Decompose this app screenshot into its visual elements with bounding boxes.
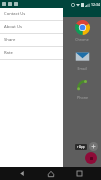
button[interactable]: About Us — [0, 21, 63, 33]
button[interactable]: r App — [77, 145, 85, 149]
button[interactable]: Phone — [67, 77, 97, 101]
staticText: Contact Us — [4, 11, 26, 17]
button[interactable]: Email — [67, 48, 97, 72]
button[interactable]: Add item — [85, 152, 97, 164]
button[interactable]: Rate — [0, 47, 63, 59]
staticText: Phone — [77, 95, 88, 100]
staticText: 12:34 — [91, 2, 100, 7]
button[interactable]: Contact Us — [0, 8, 63, 20]
button[interactable]: Back — [16, 167, 29, 180]
button[interactable]: Recents — [73, 167, 86, 180]
button[interactable]: Home — [44, 167, 57, 180]
staticText: About Us — [4, 24, 23, 30]
button[interactable]: Share — [0, 34, 63, 46]
staticText: r App — [77, 145, 85, 149]
staticText: Email — [77, 66, 87, 71]
staticText: Chrome — [75, 37, 89, 42]
staticText: Share — [4, 37, 16, 43]
button[interactable]: Add — [89, 142, 98, 151]
button[interactable]: Chrome — [67, 19, 97, 43]
staticText: Rate — [4, 50, 13, 56]
